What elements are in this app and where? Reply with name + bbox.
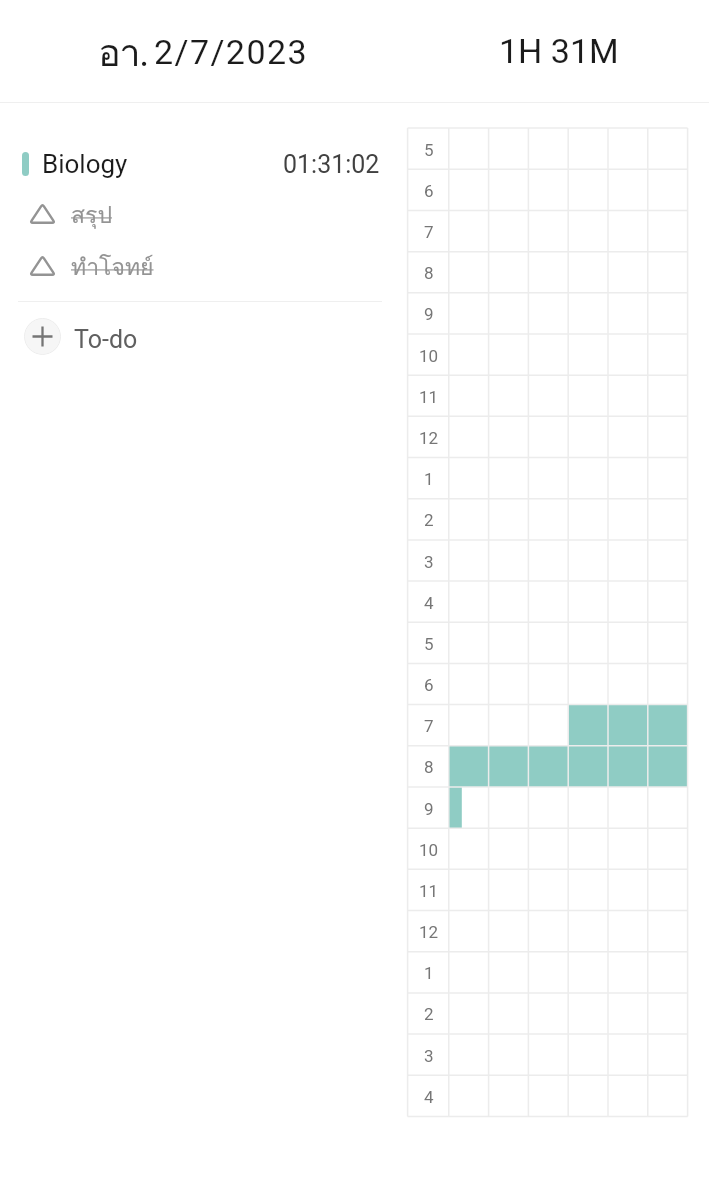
staticText: 3 — [424, 1046, 434, 1066]
button[interactable]: สรุป — [0, 190, 400, 236]
button[interactable]: Add to-do — [0, 313, 400, 360]
staticText: 1 — [424, 963, 434, 983]
staticText: 8 — [424, 263, 434, 283]
staticText: 7 — [424, 222, 434, 242]
staticText: 1 — [424, 469, 434, 489]
staticText: 12 — [419, 428, 439, 448]
staticText: อา. — [98, 22, 148, 82]
staticText: 5 — [424, 140, 434, 160]
staticText: 01:31:02 — [283, 150, 380, 179]
staticText: 1H 31M — [499, 31, 619, 71]
staticText: 10 — [419, 346, 439, 366]
other: Add to-do — [24, 318, 61, 355]
staticText: 11 — [419, 881, 439, 901]
staticText: 2 — [424, 1004, 434, 1024]
staticText: 12 — [419, 922, 439, 942]
staticText: สรุป — [71, 197, 112, 234]
button[interactable]: Biology — [0, 140, 400, 188]
staticText: 5 — [424, 634, 434, 654]
staticText: 6 — [424, 675, 434, 695]
staticText: Biology — [42, 149, 128, 179]
staticText: 6 — [424, 181, 434, 201]
staticText: 8 — [424, 757, 434, 777]
staticText: 2 — [424, 510, 434, 530]
staticText: 11 — [419, 387, 439, 407]
staticText: 2/7/2023 — [154, 32, 308, 72]
staticText: 4 — [424, 1087, 434, 1107]
button[interactable]: ทำโจทย์ — [0, 242, 400, 288]
staticText: 9 — [424, 304, 434, 324]
staticText: 3 — [424, 552, 434, 572]
button[interactable]: อา. — [0, 0, 709, 102]
staticText: 10 — [419, 840, 439, 860]
staticText: 4 — [424, 593, 434, 613]
staticText: 7 — [424, 716, 434, 736]
staticText: To-do — [74, 325, 138, 354]
staticText: 9 — [424, 799, 434, 819]
staticText: ทำโจทย์ — [71, 249, 154, 286]
